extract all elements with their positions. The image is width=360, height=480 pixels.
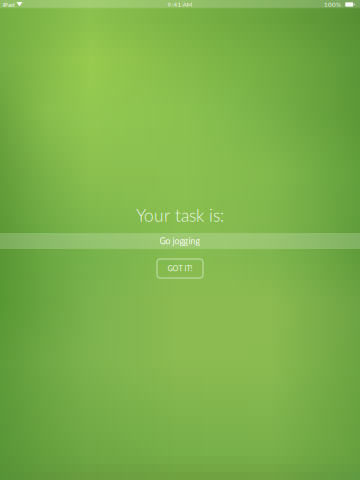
staticText: 9:41 AM [167, 1, 192, 8]
staticText: Your task is: [136, 205, 224, 225]
staticText: GOT IT! [167, 264, 192, 273]
staticText: Go jogging [159, 236, 200, 246]
staticText: iPad [3, 1, 15, 8]
button[interactable]: GOT IT! [157, 259, 203, 278]
staticText: 100% [324, 1, 341, 8]
